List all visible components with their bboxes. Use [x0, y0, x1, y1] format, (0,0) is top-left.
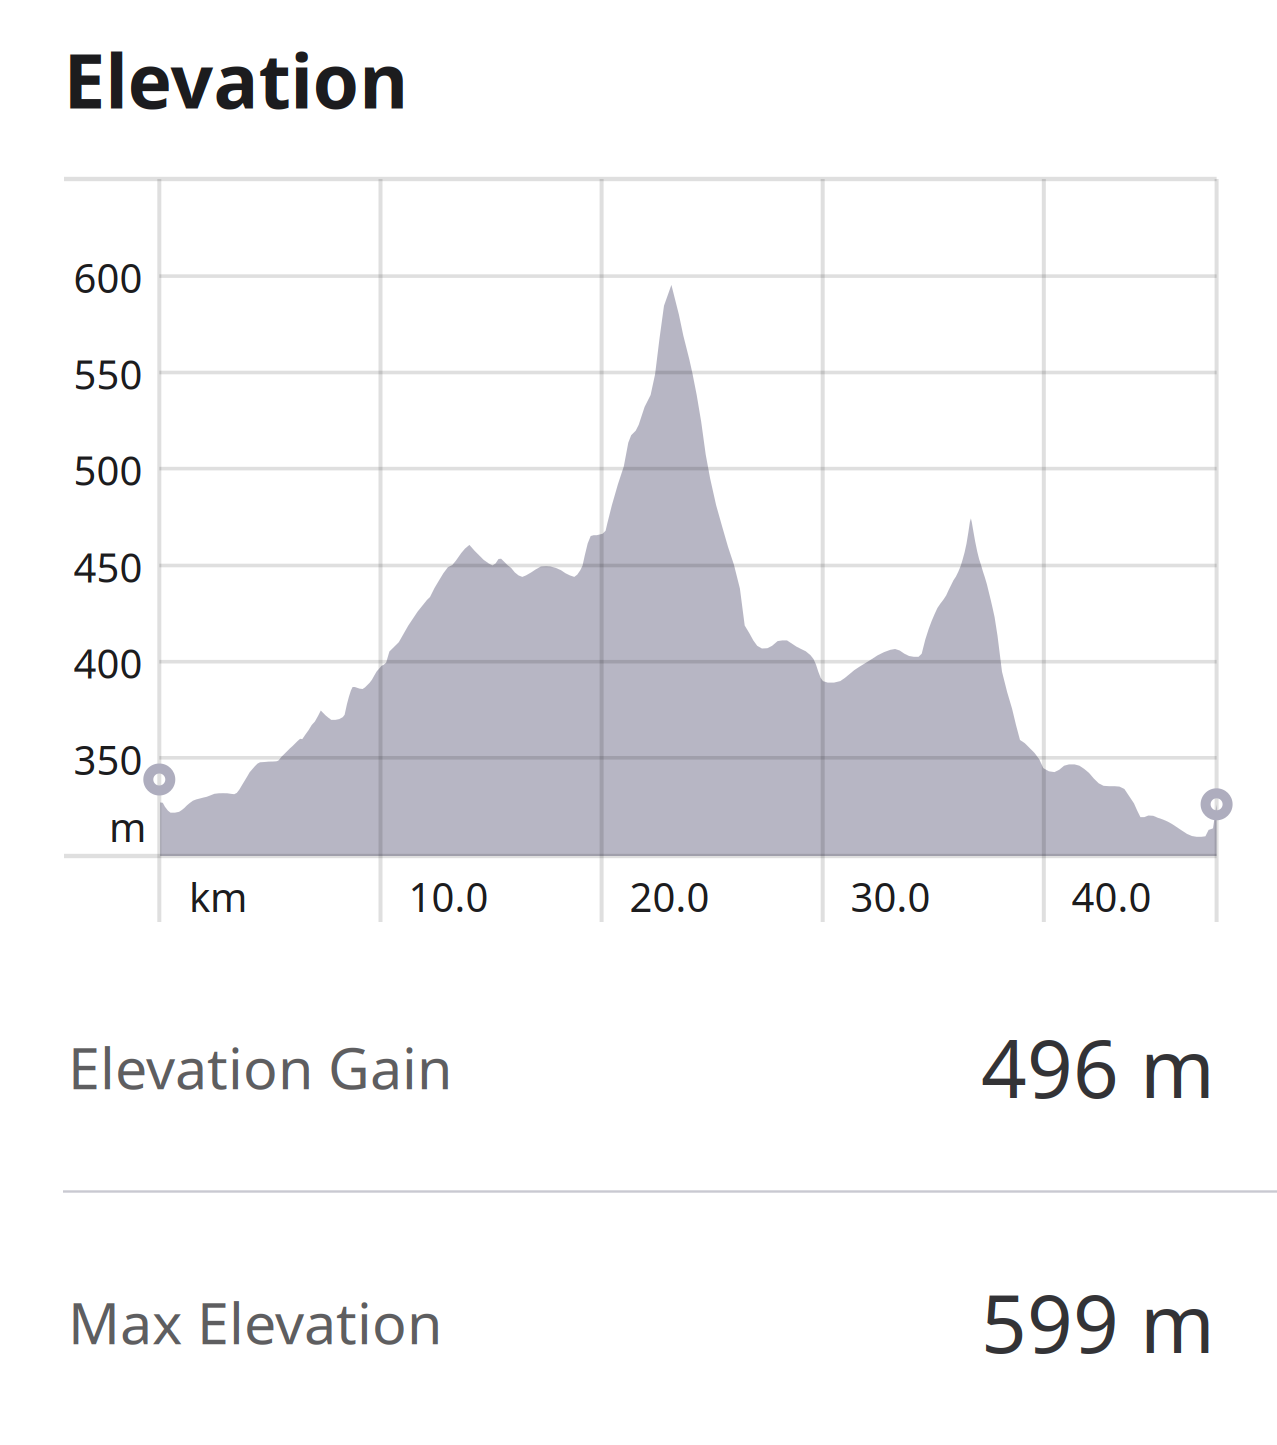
staticText: km — [189, 870, 247, 923]
staticText: 450 — [73, 540, 142, 593]
staticText: 10.0 — [408, 870, 488, 923]
staticText: 550 — [73, 347, 142, 400]
staticText: Elevation Gain — [68, 1029, 452, 1105]
staticText: 599 m — [981, 1269, 1215, 1375]
button[interactable]: Max Elevation — [0, 1199, 1277, 1444]
staticText: 30.0 — [850, 870, 930, 923]
staticText: 20.0 — [629, 870, 709, 923]
staticText: Elevation — [63, 30, 408, 129]
staticText: 600 — [73, 251, 142, 304]
staticText: 350 — [73, 733, 142, 786]
staticText: 500 — [73, 443, 142, 496]
staticText: 40.0 — [1071, 870, 1151, 923]
button[interactable]: Elevation Gain — [0, 944, 1277, 1189]
staticText: Max Elevation — [68, 1284, 442, 1360]
staticText: 400 — [73, 636, 142, 689]
staticText: m — [109, 800, 146, 853]
staticText: 496 m — [981, 1014, 1215, 1120]
